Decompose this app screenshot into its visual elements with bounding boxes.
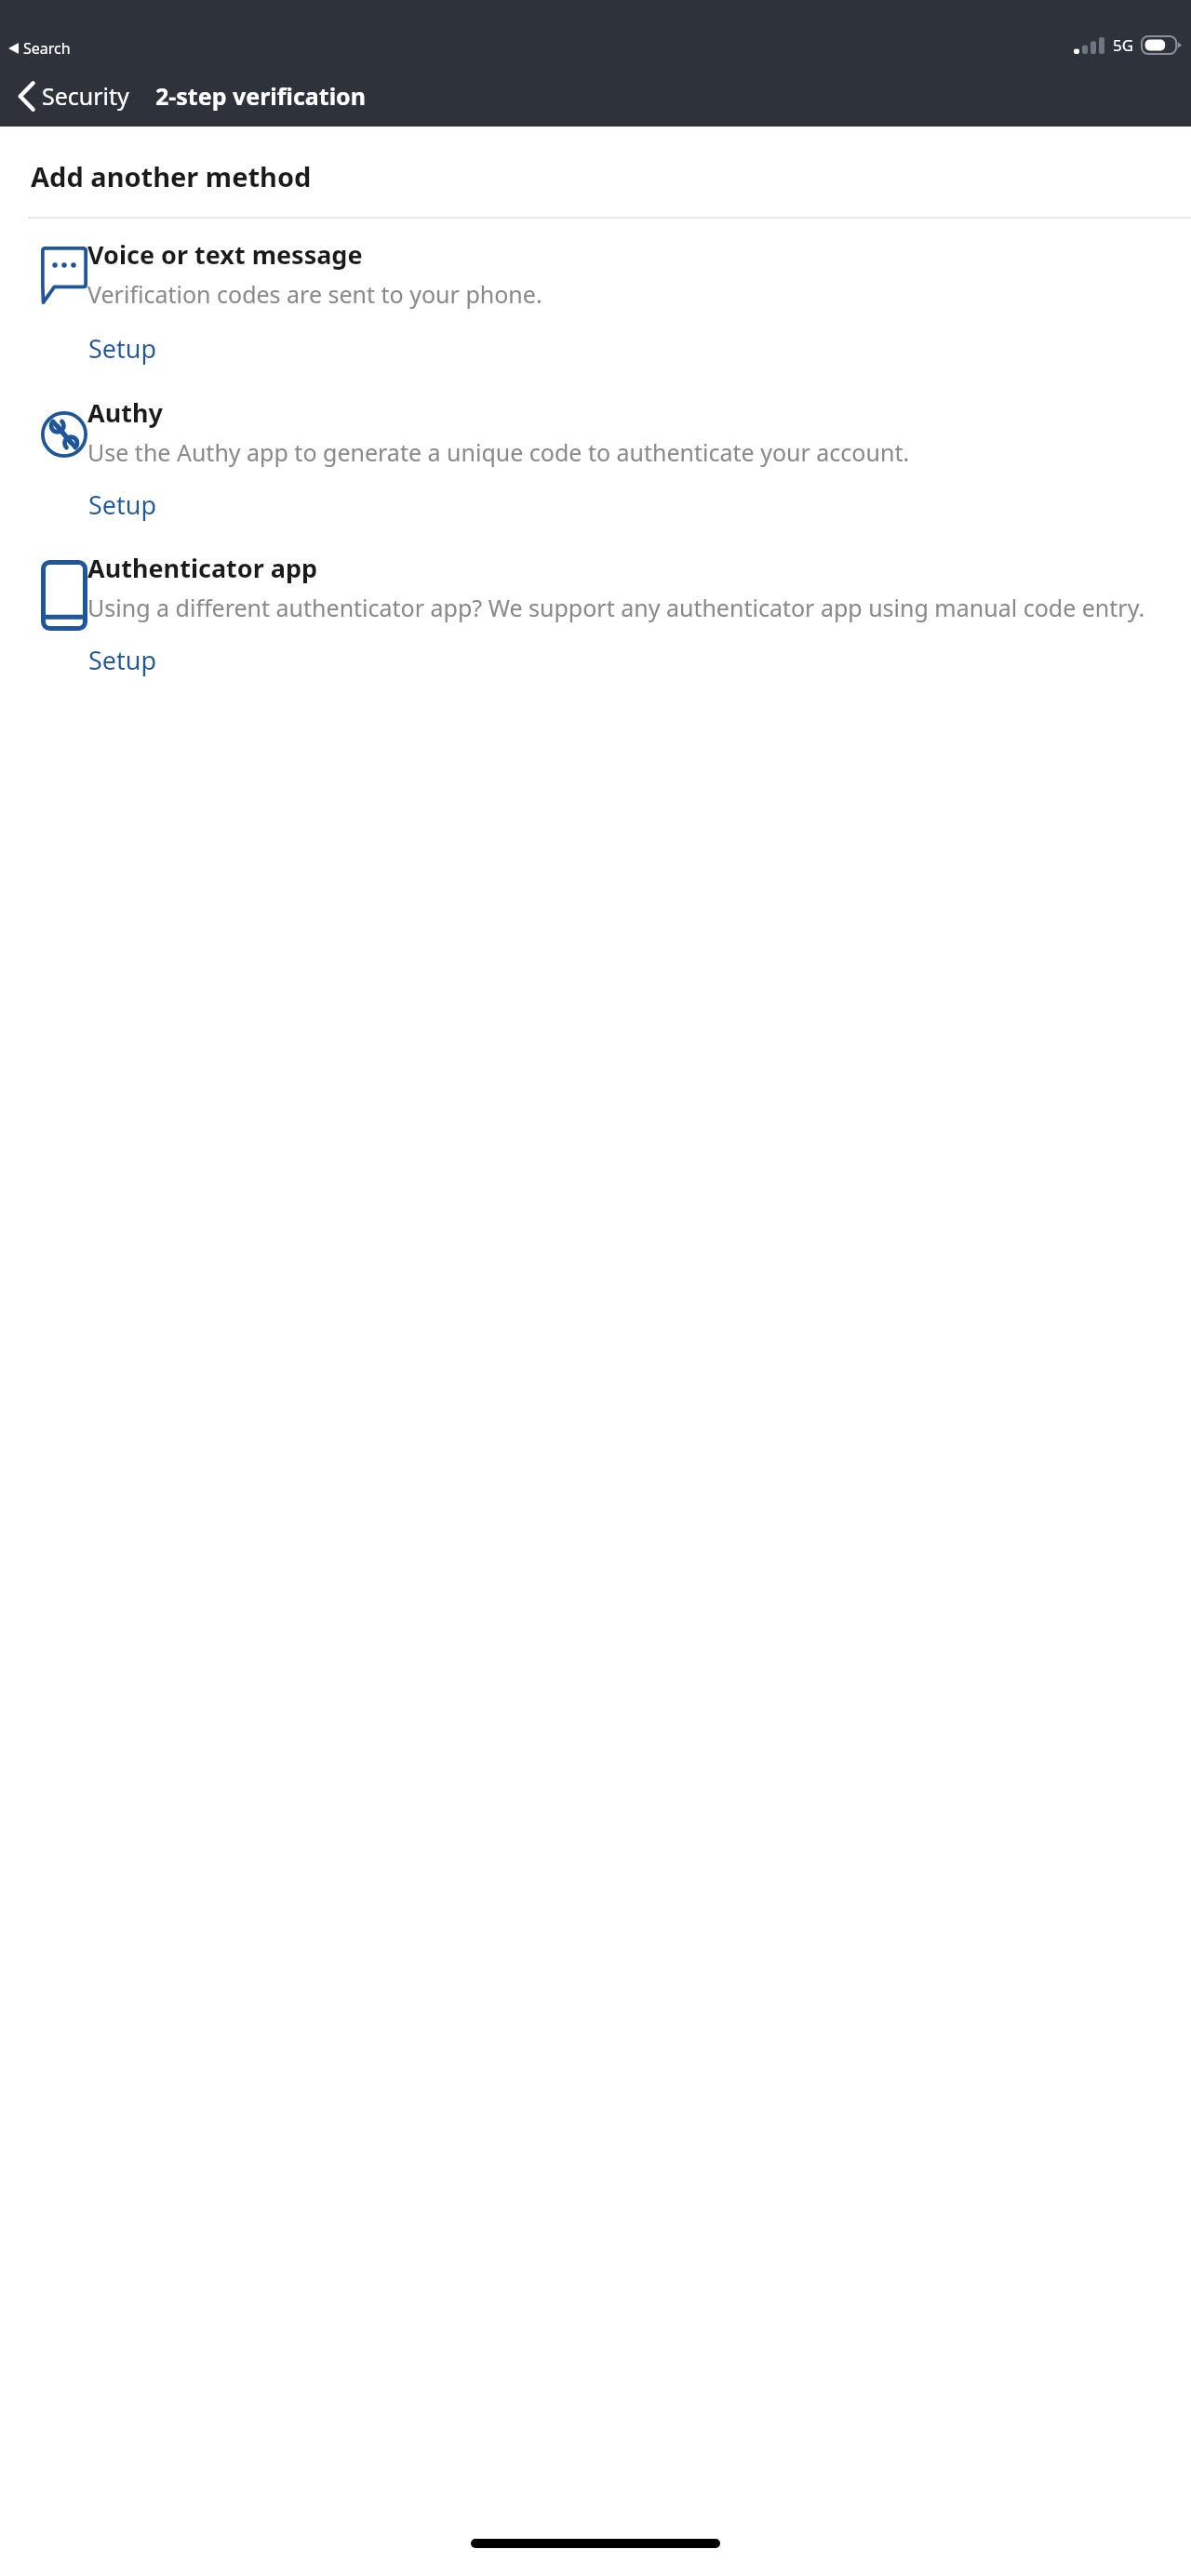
- staticText: Setup: [88, 331, 157, 366]
- staticText: Security: [42, 80, 129, 112]
- other: Authenticator app: [41, 560, 87, 631]
- button[interactable]: Setup: [87, 641, 158, 679]
- staticText: Use the Authy app to generate a unique c…: [87, 436, 910, 468]
- staticText: Add another method: [31, 158, 312, 194]
- staticText: Setup: [88, 643, 157, 677]
- other: Text message: [41, 247, 87, 304]
- staticText: Setup: [88, 487, 157, 522]
- staticText: 2-step verification: [155, 80, 366, 112]
- button[interactable]: Security: [13, 76, 135, 115]
- staticText: Authy: [87, 395, 163, 430]
- staticText: Verification codes are sent to your phon…: [87, 278, 542, 310]
- button[interactable]: Setup: [87, 486, 158, 524]
- staticText: 5G: [1113, 34, 1134, 56]
- staticText: Using a different authenticator app? We …: [87, 592, 1145, 623]
- other: Authy: [41, 405, 87, 464]
- button[interactable]: Setup: [87, 329, 158, 367]
- staticText: Voice or text message: [87, 237, 363, 272]
- staticText: Search: [23, 38, 71, 59]
- staticText: Authenticator app: [87, 551, 318, 585]
